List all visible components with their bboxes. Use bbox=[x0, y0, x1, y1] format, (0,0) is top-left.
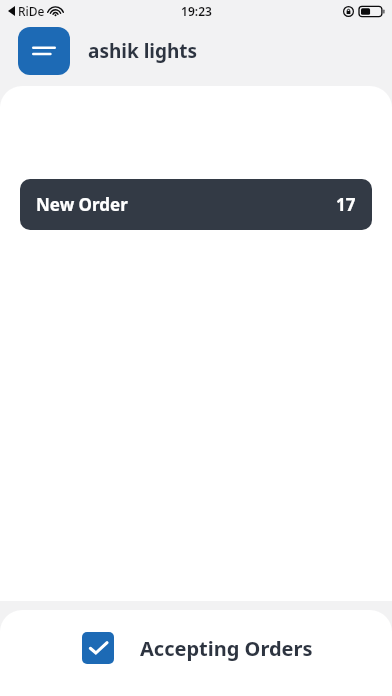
staticText: 17 bbox=[336, 193, 356, 216]
staticText: Accepting Orders bbox=[140, 635, 313, 662]
button[interactable]: Accepting Orders bbox=[74, 624, 313, 672]
staticText: New Order bbox=[36, 193, 128, 216]
button[interactable]: Menu bbox=[18, 27, 70, 75]
button[interactable]: New Order bbox=[20, 179, 372, 230]
staticText: RiDe bbox=[18, 3, 45, 19]
staticText: 19:23 bbox=[181, 3, 212, 19]
staticText: ashik lights bbox=[88, 38, 198, 64]
